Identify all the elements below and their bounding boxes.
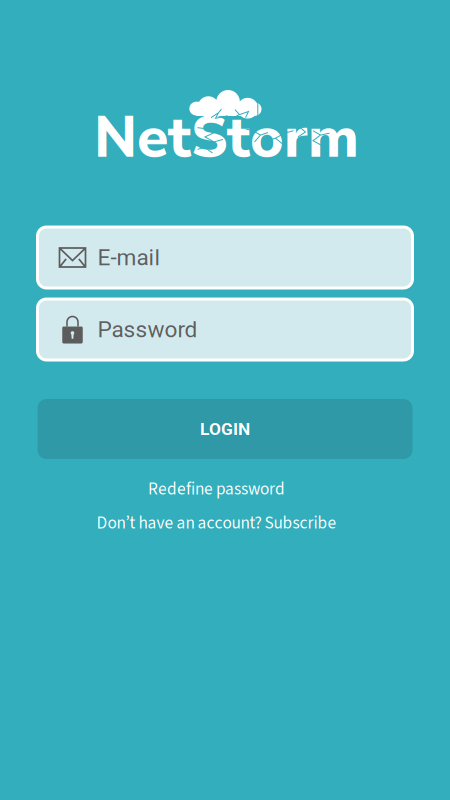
staticText: NetStorm [94, 99, 359, 177]
button[interactable]: LOGIN [37, 399, 412, 459]
button[interactable]: Redefine password [37, 477, 412, 501]
button[interactable]: E-mail [37, 227, 412, 288]
staticText: Password [97, 316, 197, 343]
staticText: LOGIN [200, 419, 250, 439]
staticText: E-mail [97, 244, 160, 271]
button[interactable]: Don’t have an account? Subscribe [37, 511, 412, 535]
staticText: Don’t have an account? Subscribe [96, 511, 336, 535]
staticText: Redefine password [148, 477, 285, 501]
button[interactable]: Password [37, 299, 412, 360]
